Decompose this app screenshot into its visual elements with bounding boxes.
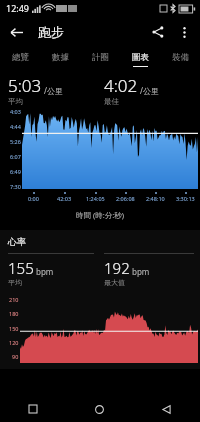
staticText: 平均 (8, 97, 23, 106)
staticText: 最佳 (104, 97, 119, 106)
button[interactable]: Recents (0, 396, 66, 422)
staticText: bpm (36, 266, 54, 277)
staticText: 150 (9, 325, 19, 332)
button[interactable]: 計圈 (80, 48, 120, 70)
staticText: 7:30 (10, 183, 21, 190)
staticText: 0:00 (28, 195, 39, 202)
staticText: 心率 (8, 236, 26, 247)
button[interactable]: Home (66, 396, 133, 422)
staticText: 155 (8, 258, 34, 278)
staticText: 計圈 (92, 52, 109, 63)
button[interactable]: 總覽 (0, 48, 40, 70)
staticText: 最大值 (104, 278, 125, 287)
staticText: 跑步 (38, 24, 64, 40)
staticText: 4:02 (104, 74, 138, 97)
staticText: 5:03 (8, 74, 42, 97)
staticText: bpm (132, 266, 150, 277)
staticText: 2:48:10 (146, 195, 165, 202)
staticText: 4:44 (10, 123, 21, 130)
button[interactable]: 圖表 (120, 48, 160, 70)
staticText: 210 (9, 296, 19, 303)
staticText: 4:03 (10, 108, 21, 115)
staticText: /公里 (44, 85, 63, 96)
staticText: 時間 (時:分:秒) (76, 210, 124, 220)
staticText: 192 (104, 258, 130, 278)
staticText: 120 (9, 339, 19, 346)
staticText: 12:49 (6, 2, 30, 14)
staticText: /公里 (140, 85, 159, 96)
staticText: 數據 (52, 52, 69, 63)
staticText: 總覽 (12, 52, 29, 63)
staticText: 2:06:08 (116, 195, 135, 202)
staticText: 90 (12, 353, 19, 360)
staticText: 3:30:13 (176, 195, 195, 202)
staticText: 圖表 (132, 52, 149, 63)
button[interactable]: 裝備 (160, 48, 200, 70)
button[interactable]: Share (146, 20, 170, 44)
button[interactable]: Back (3, 19, 29, 45)
staticText: 裝備 (172, 52, 189, 63)
staticText: 6:07 (10, 153, 21, 160)
button[interactable]: 數據 (40, 48, 80, 70)
button[interactable]: Back (133, 396, 200, 422)
staticText: 平均 (8, 278, 22, 287)
staticText: 5:26 (10, 138, 21, 145)
staticText: 180 (9, 310, 19, 317)
staticText: 1:24:05 (86, 195, 105, 202)
button[interactable]: More options (172, 20, 196, 44)
staticText: 6:49 (10, 168, 21, 175)
staticText: 42:03 (57, 195, 72, 202)
